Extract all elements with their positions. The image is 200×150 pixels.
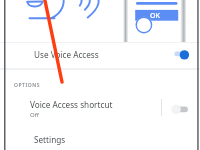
button[interactable]: Settings bbox=[0, 130, 200, 150]
staticText: OPTIONS bbox=[14, 82, 40, 89]
button[interactable]: Use Voice Access toggle bbox=[172, 47, 194, 62]
staticText: Settings bbox=[34, 134, 66, 145]
button[interactable]: Voice Access shortcut bbox=[0, 93, 200, 119]
button[interactable]: Voice Access shortcut toggle bbox=[169, 102, 192, 117]
staticText: Voice Access shortcut bbox=[30, 99, 113, 110]
staticText: Off bbox=[30, 111, 39, 119]
button[interactable]: Use Voice Access bbox=[0, 44, 200, 69]
staticText: Use Voice Access bbox=[34, 49, 99, 60]
staticText: OK bbox=[150, 11, 160, 21]
